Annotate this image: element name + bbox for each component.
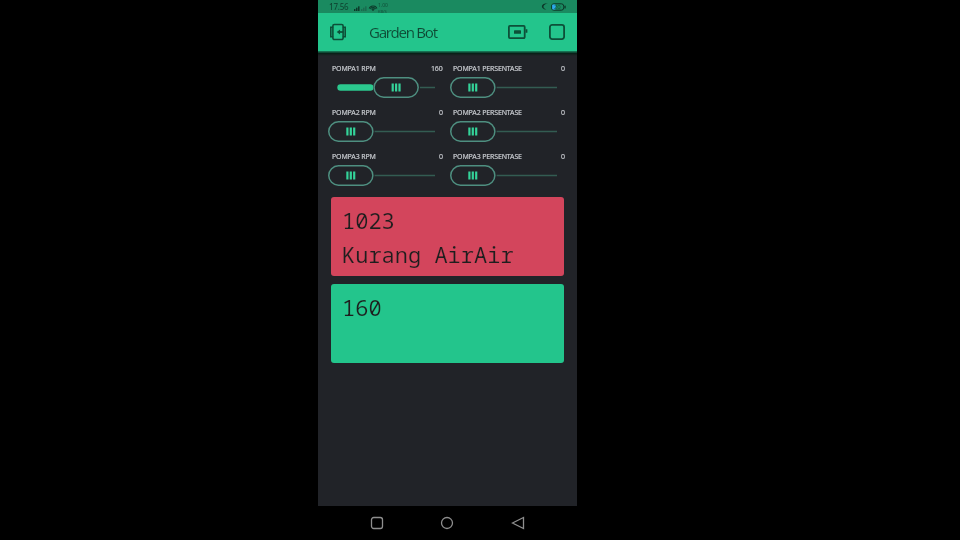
- button[interactable]: 1023: [331, 197, 564, 276]
- button[interactable]: Back: [324, 18, 351, 45]
- button[interactable]: Slider: [450, 165, 557, 186]
- button[interactable]: Stop: [549, 19, 575, 45]
- staticText: Kurang AirAir: [342, 239, 514, 269]
- staticText: 160: [431, 64, 443, 74]
- button[interactable]: Battery status: [508, 20, 532, 44]
- staticText: POMPA3 PERSENTASE: [453, 152, 522, 162]
- staticText: 1.00: [378, 2, 388, 9]
- staticText: 17.56: [329, 1, 349, 12]
- button[interactable]: 160: [331, 284, 564, 363]
- staticText: 0: [439, 108, 443, 118]
- staticText: KB/S: [378, 9, 387, 14]
- staticText: POMPA2 RPM: [332, 108, 376, 118]
- staticText: POMPA1 PERSENTASE: [453, 64, 522, 74]
- staticText: POMPA1 RPM: [332, 64, 376, 74]
- button[interactable]: Slider: [450, 121, 557, 142]
- button[interactable]: Slider: [328, 77, 435, 98]
- staticText: Garden Bot: [369, 22, 437, 42]
- staticText: 1023: [342, 205, 395, 235]
- button[interactable]: Slider: [328, 165, 435, 186]
- staticText: 0: [561, 64, 565, 74]
- staticText: 0: [561, 152, 565, 162]
- button[interactable]: Slider: [328, 121, 435, 142]
- staticText: 20: [554, 3, 561, 11]
- button[interactable]: Slider: [450, 77, 557, 98]
- staticText: 160: [342, 292, 382, 322]
- staticText: 0: [561, 108, 565, 118]
- staticText: POMPA3 RPM: [332, 152, 376, 162]
- staticText: POMPA2 PERSENTASE: [453, 108, 522, 118]
- staticText: 0: [439, 152, 443, 162]
